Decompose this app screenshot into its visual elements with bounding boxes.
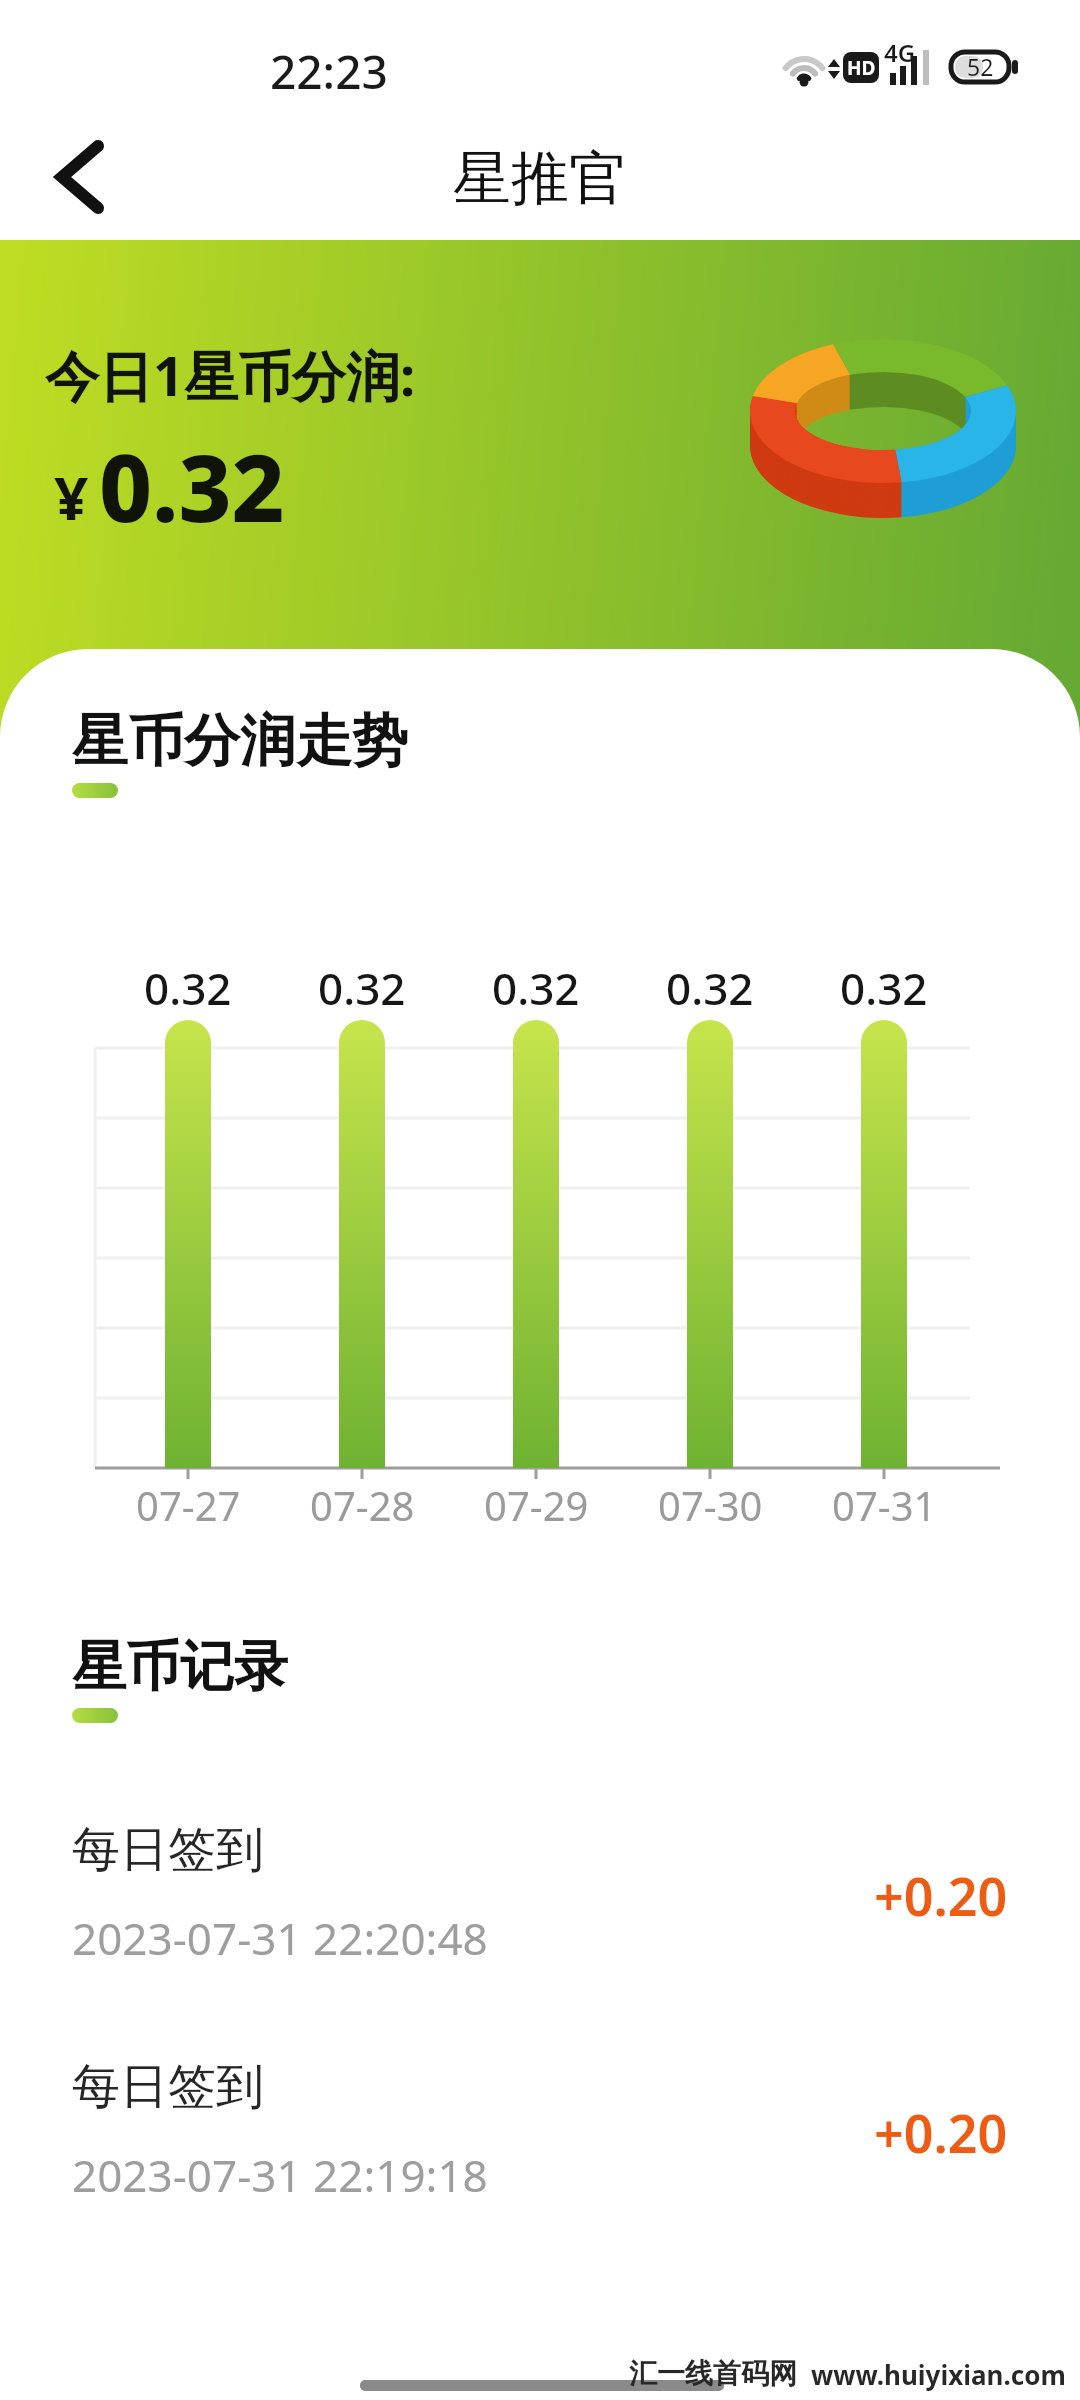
staticText: 0.32 [99, 424, 285, 549]
button[interactable]: 每日签到 [40, 1800, 1040, 2000]
staticText: www.huiyixian.com [811, 2357, 1066, 2392]
staticText: 星推官 [453, 142, 627, 215]
staticText: 07-31 [832, 1478, 937, 1526]
staticText: 2023-07-31 22:20:48 [72, 1908, 488, 1968]
staticText: 每日签到 [72, 2057, 264, 2117]
staticText: 07-30 [658, 1478, 763, 1526]
staticText: +0.20 [874, 1860, 1008, 1931]
staticText: +0.20 [874, 2097, 1008, 2168]
staticText: 星币记录 [72, 1633, 288, 1701]
staticText: 每日签到 [72, 1820, 264, 1880]
staticText: 22:23 [270, 40, 388, 103]
staticText: 07-28 [310, 1478, 415, 1526]
staticText: 0.32 [492, 958, 580, 1010]
staticText: 07-29 [484, 1478, 589, 1526]
staticText: 今日1星币分润: [45, 338, 416, 412]
staticText: 汇一线首码网 [629, 2356, 797, 2391]
staticText: 0.32 [144, 958, 232, 1010]
staticText: 4G [884, 36, 916, 69]
staticText: 0.32 [666, 958, 754, 1010]
staticText: 星币分润走势 [72, 706, 408, 777]
staticText: 0.32 [318, 958, 406, 1010]
staticText: ¥ [54, 456, 89, 538]
staticText: HD [847, 55, 876, 81]
button[interactable]: 每日签到 [40, 2037, 1040, 2237]
button[interactable] [40, 140, 116, 216]
staticText: 07-27 [136, 1478, 241, 1526]
staticText: 0.32 [840, 958, 928, 1010]
staticText: 52 [967, 51, 994, 82]
staticText: 2023-07-31 22:19:18 [72, 2145, 488, 2205]
